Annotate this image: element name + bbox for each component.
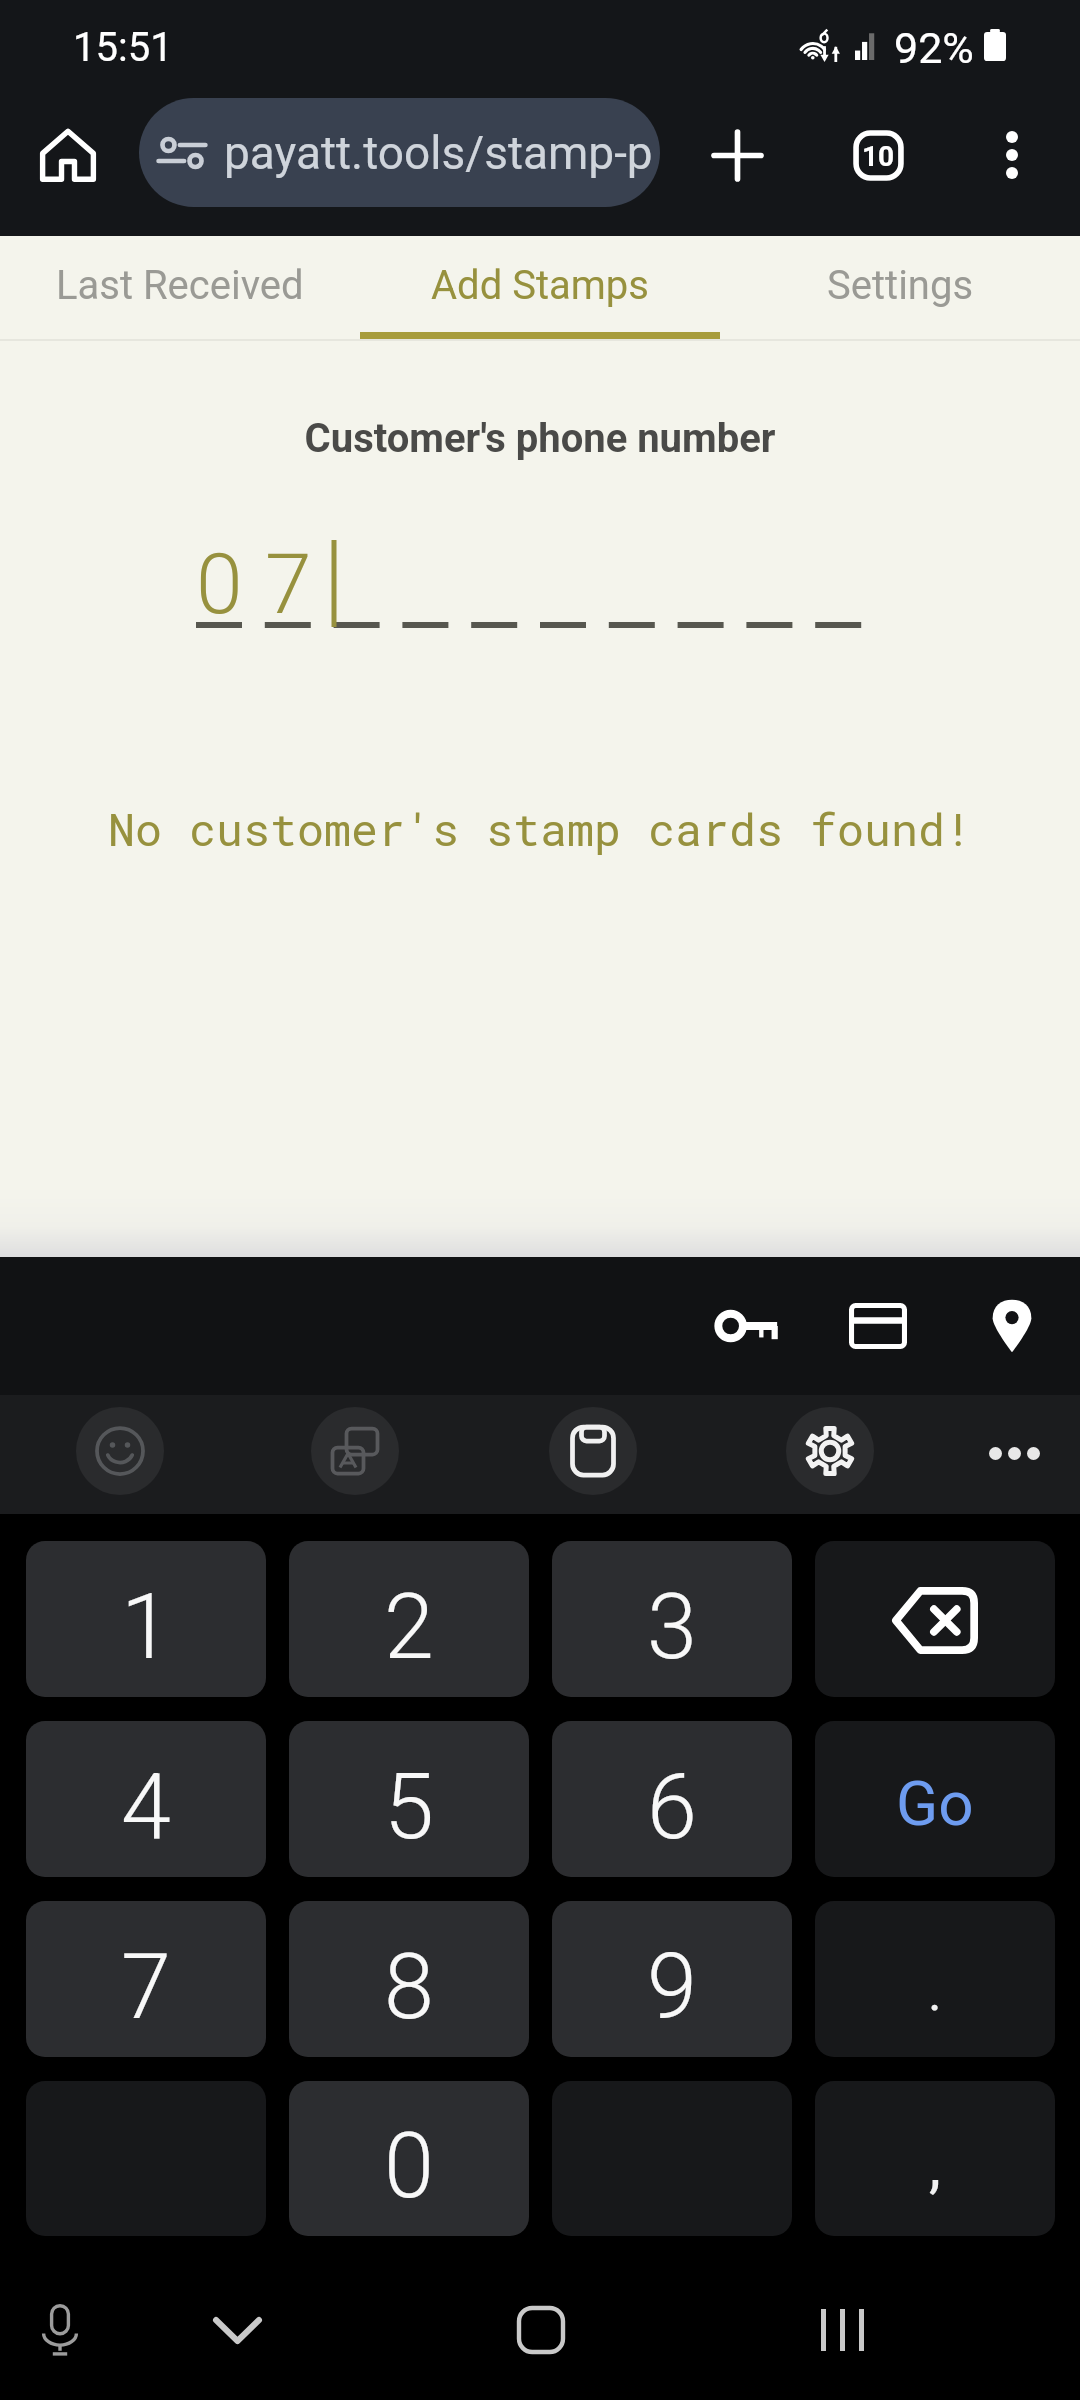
button[interactable]: 5 xyxy=(289,1721,529,1877)
button[interactable]: 1 xyxy=(26,1541,266,1697)
staticText: 5 xyxy=(384,1755,434,1860)
button[interactable]: payatt.tools/stamp-p xyxy=(139,98,660,207)
staticText: . xyxy=(928,1962,942,2023)
button[interactable]: Add Stamps xyxy=(360,236,720,339)
staticText: Last Received xyxy=(56,262,304,309)
button[interactable]: Emoji xyxy=(76,1407,164,1495)
staticText: 0 xyxy=(196,535,242,633)
staticText: 92% xyxy=(894,23,974,73)
button[interactable]: More options xyxy=(968,111,1056,199)
button[interactable]: . xyxy=(815,1901,1055,2057)
button[interactable]: 9 xyxy=(552,1901,792,2057)
button[interactable]: Payment methods xyxy=(828,1276,928,1376)
staticText: 2 xyxy=(384,1575,434,1680)
staticText: 0 xyxy=(384,2114,434,2219)
staticText: 10 xyxy=(862,140,895,173)
button[interactable]: 0 xyxy=(289,2081,529,2236)
button[interactable]: Clipboard xyxy=(549,1407,637,1495)
button[interactable]: More xyxy=(970,1409,1058,1497)
staticText: 7 xyxy=(121,1935,171,2040)
button[interactable]: New tab xyxy=(693,111,781,199)
staticText: Settings xyxy=(827,262,974,309)
button[interactable]: Hide keyboard xyxy=(193,2286,281,2374)
button[interactable]: Backspace xyxy=(815,1541,1055,1697)
staticText: No customer's stamp cards found! xyxy=(0,799,1080,858)
staticText: 7 xyxy=(265,535,311,633)
button[interactable]: Voice input xyxy=(16,2286,104,2374)
button[interactable]: Last Received xyxy=(0,236,360,339)
staticText: Go xyxy=(896,1767,974,1840)
button[interactable]: Home xyxy=(24,111,112,199)
button[interactable]: Go xyxy=(815,1721,1055,1877)
staticText: payatt.tools/stamp-p xyxy=(224,126,653,180)
staticText: 15:51 xyxy=(73,24,173,71)
button[interactable]: 7 xyxy=(26,1901,266,2057)
button[interactable]: 8 xyxy=(289,1901,529,2057)
button[interactable]: Keyboard settings xyxy=(786,1407,874,1495)
staticText: 8 xyxy=(384,1935,434,2040)
staticText: 9 xyxy=(647,1935,697,2040)
staticText: Add Stamps xyxy=(431,262,649,309)
staticText: Customer's phone number xyxy=(0,415,1080,462)
button[interactable]: Settings xyxy=(720,236,1080,339)
button[interactable]: 4 xyxy=(26,1721,266,1877)
staticText: , xyxy=(929,2130,941,2200)
button[interactable]: 2 xyxy=(289,1541,529,1697)
button[interactable]: , xyxy=(815,2081,1055,2236)
staticText: 3 xyxy=(647,1575,697,1680)
button[interactable]: Switch tabs xyxy=(834,111,922,199)
staticText: 4 xyxy=(121,1755,171,1860)
button[interactable]: Addresses xyxy=(962,1276,1062,1376)
button[interactable]: 6 xyxy=(552,1721,792,1877)
button[interactable]: Recent apps xyxy=(798,2286,886,2374)
button[interactable]: Translate xyxy=(311,1407,399,1495)
button[interactable]: Home xyxy=(497,2286,585,2374)
button[interactable]: Passwords xyxy=(698,1276,798,1376)
staticText: 6 xyxy=(647,1755,697,1860)
button[interactable]: 3 xyxy=(552,1541,792,1697)
staticText: 1 xyxy=(121,1575,171,1680)
